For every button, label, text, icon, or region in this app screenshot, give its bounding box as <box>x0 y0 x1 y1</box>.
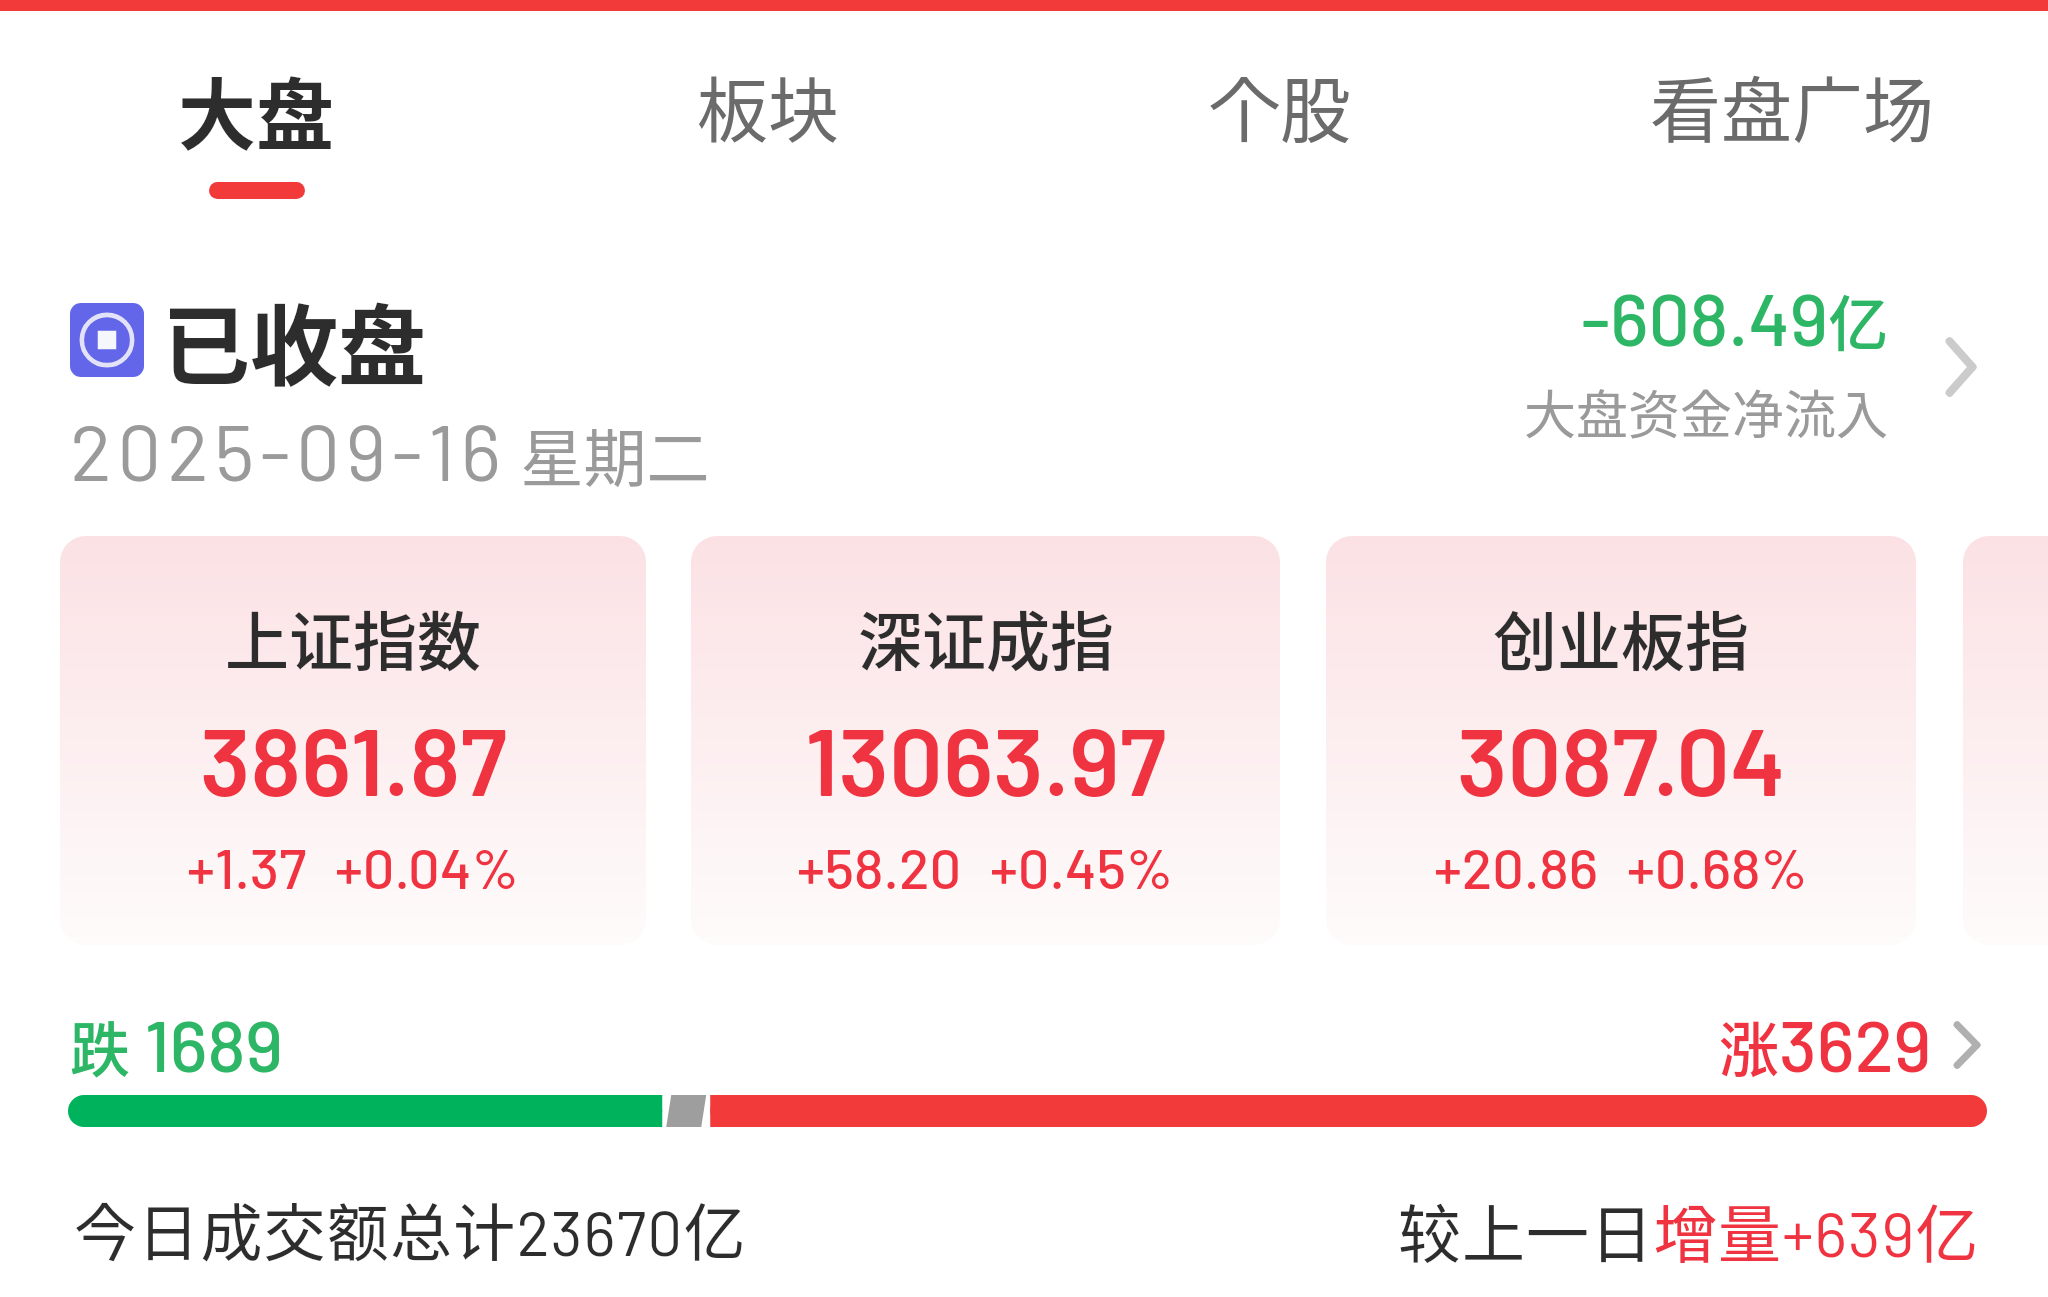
staticText: +20.86 <box>1434 833 1599 900</box>
staticText: +0.04% <box>335 833 519 900</box>
staticText: -608.49亿 <box>1581 273 1889 363</box>
staticText: 今日成交额总计23670亿 <box>74 1184 747 1274</box>
button[interactable]: 上证指数 <box>60 536 646 945</box>
button[interactable]: 大盘 <box>0 54 512 214</box>
button[interactable]: 深证成指 <box>691 536 1280 945</box>
staticText: 已收盘 <box>162 276 427 403</box>
staticText: +1.37 <box>187 833 307 900</box>
staticText: +58.20 <box>797 833 962 900</box>
staticText: 创业板指 <box>1493 591 1749 684</box>
button[interactable]: 板块 <box>512 54 1024 214</box>
button[interactable]: 跌 1689 <box>70 1000 284 1089</box>
staticText: 个股 <box>1209 54 1352 157</box>
button[interactable]: 创业板指 <box>1326 536 1916 945</box>
staticText: 13063.97 <box>805 701 1167 815</box>
button[interactable]: 个股 <box>1024 54 1536 214</box>
staticText: 3087.04 <box>1457 701 1786 815</box>
button[interactable]: 看盘广场 <box>1536 54 2048 214</box>
staticText: 2025-09-16 星期二 <box>70 403 710 499</box>
button[interactable]: 涨3629 <box>1719 1000 1980 1089</box>
staticText: 看盘广场 <box>1650 54 1935 157</box>
staticText: +0.45% <box>990 833 1174 900</box>
staticText: 大盘资金净流入 <box>1524 374 1889 449</box>
staticText: 大盘 <box>178 54 335 167</box>
staticText: 板块 <box>697 54 840 157</box>
staticText: 3861.87 <box>200 701 507 815</box>
other: 涨跌家数比例 <box>68 1095 1987 1127</box>
staticText: 深证成指 <box>858 591 1114 684</box>
staticText: 较上一日增量+639亿 <box>1398 1184 1980 1275</box>
button[interactable]: 科创50 <box>1963 536 2048 945</box>
button[interactable]: 查看大盘资金净流入 <box>1946 339 1976 395</box>
button[interactable]: -608.49亿 <box>1524 273 1889 449</box>
staticText: +0.68% <box>1627 833 1808 900</box>
staticText: 上证指数 <box>225 591 481 684</box>
staticText: 涨3629 <box>1719 1000 1932 1089</box>
